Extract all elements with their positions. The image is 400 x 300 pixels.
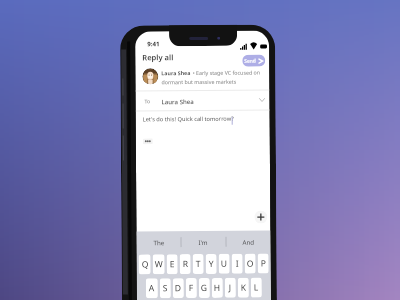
button[interactable]: H [212, 278, 223, 298]
button[interactable]: J [225, 278, 236, 298]
staticText: D [175, 282, 182, 294]
button[interactable]: U [219, 254, 230, 274]
button[interactable]: I'm [181, 231, 226, 253]
staticText: T [196, 258, 201, 270]
staticText: Q [142, 258, 149, 270]
staticText: H [214, 282, 221, 294]
staticText: • Early stage VC focused on [191, 69, 260, 76]
staticText: E [170, 258, 175, 270]
button[interactable]: E [167, 254, 178, 274]
staticText: K [241, 282, 247, 294]
staticText: Let's do this! Quick call tomorrow? [143, 115, 235, 123]
staticText: And [242, 238, 255, 246]
button[interactable]: F [186, 278, 197, 298]
button[interactable]: Add attachment [254, 210, 267, 224]
staticText: S [163, 282, 168, 294]
button[interactable]: D [173, 278, 184, 298]
button[interactable]: The [136, 231, 181, 253]
staticText: The [153, 238, 165, 246]
button[interactable]: T [193, 254, 204, 274]
button[interactable]: To [135, 90, 270, 110]
staticText: dormant but massive markets [161, 78, 236, 85]
staticText: W [155, 258, 163, 270]
staticText: Y [209, 258, 214, 270]
staticText: To [144, 97, 150, 104]
staticText: P [261, 257, 267, 269]
staticText: L [254, 282, 259, 294]
button[interactable]: I [232, 254, 243, 274]
staticText: J [229, 282, 232, 294]
staticText: R [183, 258, 189, 270]
button[interactable]: Send [242, 54, 265, 67]
button[interactable]: P [258, 253, 269, 274]
button[interactable]: O [245, 254, 256, 274]
staticText: O [247, 258, 254, 270]
button[interactable]: W [153, 254, 165, 274]
button[interactable]: L [251, 278, 262, 298]
staticText: U [221, 258, 228, 270]
button[interactable]: K [238, 278, 249, 298]
button[interactable]: Q [139, 254, 151, 274]
button[interactable]: Y [206, 254, 217, 274]
staticText: I [236, 258, 239, 270]
button[interactable]: A [146, 278, 158, 298]
staticText: Reply all [142, 52, 174, 62]
staticText: A [149, 282, 155, 294]
staticText: Send [244, 58, 256, 65]
staticText: F [189, 282, 194, 294]
button[interactable]: G [199, 278, 210, 298]
staticText: Laura Shea [161, 97, 195, 105]
staticText: 9:41 [147, 39, 160, 47]
staticText: Laura Shea [161, 69, 191, 76]
button[interactable]: S [160, 278, 171, 298]
button[interactable]: And [226, 230, 271, 253]
staticText: I'm [198, 238, 209, 246]
staticText: G [201, 282, 208, 294]
button[interactable]: R [180, 254, 191, 274]
